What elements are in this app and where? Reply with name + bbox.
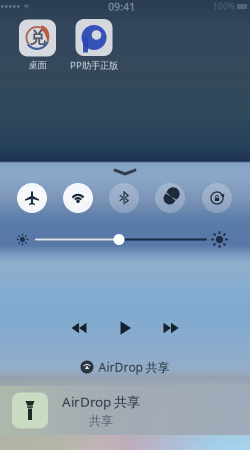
staticText: AirDrop 共享	[62, 393, 140, 410]
button[interactable]: Fast forward	[157, 316, 185, 340]
button[interactable]: Wi-Fi	[63, 183, 93, 213]
button[interactable]: AirDrop 共享	[80, 358, 169, 376]
staticText: 100%	[213, 1, 235, 12]
staticText: 09:41	[108, 0, 135, 14]
button[interactable]: Bluetooth	[109, 183, 139, 213]
button[interactable]: 兑	[19, 19, 56, 71]
button[interactable]: Play	[111, 316, 139, 340]
button[interactable]: Airplane Mode	[17, 183, 47, 213]
staticText: 桌面	[28, 59, 46, 71]
staticText: PP助手正版	[70, 59, 118, 71]
staticText: 兑	[29, 28, 45, 48]
button[interactable]: Do Not Disturb	[155, 183, 185, 213]
staticText: 共享	[89, 413, 113, 428]
button[interactable]: Rotation Lock	[202, 183, 232, 213]
staticText: AirDrop 共享	[98, 359, 169, 375]
button[interactable]: Rewind	[65, 316, 93, 340]
button[interactable]: PP助手正版	[70, 19, 118, 71]
